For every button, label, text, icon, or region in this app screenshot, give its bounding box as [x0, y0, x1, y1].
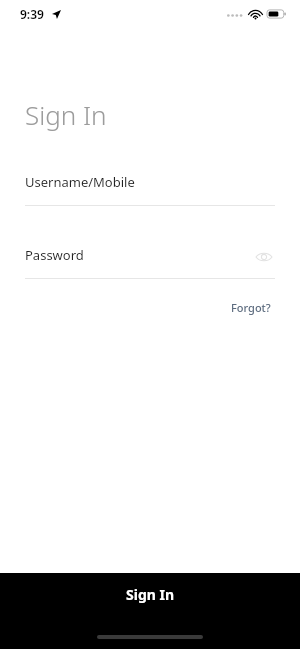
- staticText: Forgot?: [231, 300, 271, 315]
- staticText: Username/Mobile: [25, 173, 135, 191]
- button[interactable]: Password: [25, 246, 275, 279]
- staticText: Sign In: [126, 585, 175, 604]
- button[interactable]: Sign In: [0, 573, 300, 635]
- staticText: 9:39: [20, 6, 44, 22]
- button[interactable]: Username/Mobile: [25, 173, 275, 206]
- staticText: Password: [25, 246, 84, 264]
- button[interactable]: Show password: [253, 246, 275, 268]
- button[interactable]: Forgot?: [227, 296, 275, 319]
- staticText: Sign In: [25, 97, 107, 132]
